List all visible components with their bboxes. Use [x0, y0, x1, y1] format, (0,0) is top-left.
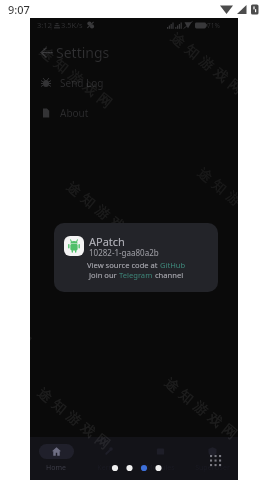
staticText: View source code at [87, 260, 160, 270]
staticText: 途知游戏网 [0, 282, 38, 355]
staticText: 9:07 [8, 2, 30, 17]
staticText: SuperUser [195, 463, 230, 473]
staticText: APatch [89, 234, 125, 249]
button[interactable]: All apps [203, 448, 227, 472]
button[interactable]: Kernel [82, 437, 134, 473]
staticText: 71% [207, 21, 220, 30]
staticText: Join our [89, 270, 119, 280]
staticText: 途知游戏网 [167, 29, 250, 102]
staticText: Settings [56, 43, 110, 62]
staticText: 途知游戏网 [36, 43, 119, 116]
staticText: 途知游戏网 [63, 178, 146, 251]
button[interactable]: GitHub [160, 260, 186, 270]
button[interactable]: About [30, 99, 238, 127]
staticText: 3:12 [37, 20, 52, 30]
staticText: 途知游戏网 [34, 384, 117, 457]
staticText: Home [46, 463, 66, 473]
staticText: About [60, 106, 89, 120]
staticText: Modules [146, 463, 175, 473]
button[interactable]: Back [32, 38, 60, 66]
staticText: Send Log [60, 76, 104, 90]
button[interactable]: Send Log [30, 69, 238, 97]
staticText: 途知游戏网 [161, 374, 244, 447]
button[interactable]: SuperUser [186, 437, 238, 473]
staticText: 途知游戏网 [194, 164, 270, 237]
button[interactable]: Home [30, 437, 82, 473]
staticText: 10282-1-gaa80a2b [89, 247, 159, 258]
button[interactable]: Modules [134, 437, 186, 473]
staticText: 3.5K/s [61, 20, 83, 30]
staticText: channel [153, 270, 184, 280]
button[interactable]: Telegram [119, 270, 153, 280]
staticText: | [49, 20, 54, 30]
staticText: Kernel [97, 463, 119, 473]
